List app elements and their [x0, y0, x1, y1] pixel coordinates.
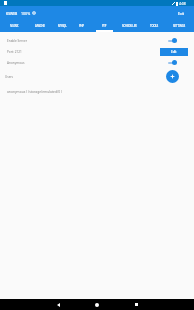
- button[interactable]: Home: [78, 299, 116, 310]
- staticText: 100%: [21, 11, 31, 16]
- button[interactable]: PHP: [73, 20, 90, 32]
- button[interactable]: Enable Server: [0, 35, 194, 46]
- button[interactable]: SCHEDULER: [118, 20, 141, 32]
- button[interactable]: Edit: [160, 48, 188, 56]
- staticText: FTP: [102, 24, 107, 28]
- button[interactable]: APACHE: [27, 20, 52, 32]
- staticText: PHP: [79, 24, 85, 28]
- button[interactable]: Add user: [166, 70, 179, 83]
- button[interactable]: Toggle: [168, 59, 177, 66]
- button[interactable]: FTP: [91, 20, 118, 32]
- staticText: SETTINGS: [173, 24, 186, 28]
- button[interactable]: SETTINGS: [167, 20, 192, 32]
- staticText: SCHEDULER: [122, 24, 137, 28]
- button[interactable]: Recents: [117, 299, 155, 310]
- staticText: MYSQL: [58, 24, 67, 28]
- button[interactable]: NGINX: [1, 20, 28, 32]
- button[interactable]: anonymous ( /storage/emulated/0 ): [0, 85, 194, 96]
- button[interactable]: Back: [39, 299, 77, 310]
- staticText: Anonymous: [7, 61, 25, 65]
- staticText: Users: [5, 75, 13, 79]
- staticText: 4:08: [179, 1, 186, 6]
- button[interactable]: TOOLS: [140, 20, 169, 32]
- staticText: Enable Server: [7, 39, 27, 43]
- staticText: Edit: [171, 50, 177, 54]
- staticText: Exit: [178, 11, 184, 16]
- staticText: APACHE: [35, 24, 45, 28]
- button[interactable]: Settings: [32, 11, 36, 15]
- staticText: NGINX: [10, 24, 19, 28]
- button[interactable]: MYSQL: [52, 20, 73, 32]
- staticText: KSWEB: [6, 11, 18, 16]
- button[interactable]: Port: 2121: [0, 46, 194, 57]
- staticText: anonymous ( /storage/emulated/0 ): [7, 89, 62, 93]
- button[interactable]: Toggle: [168, 37, 177, 44]
- staticText: TOOLS: [150, 24, 159, 28]
- staticText: Port: 2121: [7, 50, 22, 54]
- button[interactable]: Exit: [178, 11, 184, 16]
- button[interactable]: Anonymous: [0, 57, 194, 68]
